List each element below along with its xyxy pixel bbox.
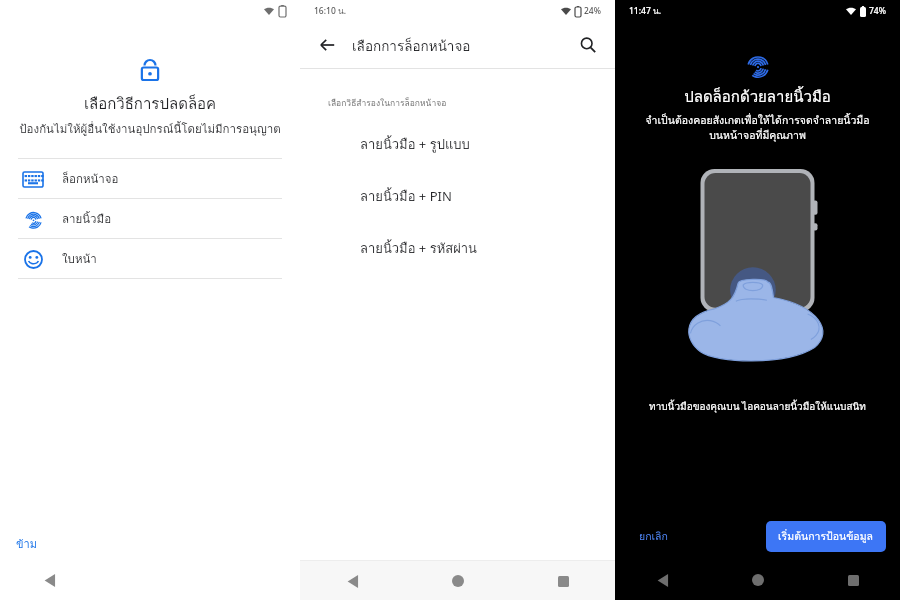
staticText: ลายนิ้วมือ + PIN	[360, 186, 452, 207]
staticText: เลือกการล็อกหน้าจอ	[352, 35, 471, 56]
button[interactable]: Home	[741, 563, 775, 597]
staticText: ล็อกหน้าจอ	[62, 170, 119, 188]
staticText: 16:10 น.	[314, 4, 347, 18]
staticText: ป้องกันไม่ให้ผู้อื่นใช้งานอุปกรณ์นี้โดยไ…	[8, 120, 292, 138]
button[interactable]: Back	[310, 28, 344, 62]
button[interactable]: ใบหน้า	[0, 239, 300, 278]
staticText: เลือกวิธีสำรองในการล็อกหน้าจอ	[328, 96, 447, 110]
button[interactable]: เริ่มต้นการป้อนข้อมูล	[766, 521, 886, 552]
staticText: ทาบนิ้วมือของคุณบน ไอคอนลายนิ้วมือให้แนบ…	[621, 399, 894, 415]
button[interactable]: ลายนิ้วมือ + รูปแบบ	[300, 132, 615, 157]
staticText: ลายนิ้วมือ + รูปแบบ	[360, 134, 470, 155]
button[interactable]: ล็อกหน้าจอ	[0, 159, 300, 198]
staticText: 24%	[584, 5, 601, 17]
staticText: เลือกวิธีการปลดล็อค	[0, 92, 300, 116]
staticText: 74%	[869, 5, 886, 17]
staticText: ลายนิ้วมือ + รหัสผ่าน	[360, 238, 477, 259]
button[interactable]: Back	[646, 563, 680, 597]
staticText: ปลดล็อกด้วยลายนิ้วมือ	[615, 85, 900, 109]
staticText: จำเป็นต้องคอยสังเกตเพื่อให้ได้การจดจำลาย…	[625, 112, 890, 143]
staticText: 11:47 น.	[629, 4, 662, 18]
button[interactable]: Back	[33, 563, 67, 597]
staticText: ยกเลิก	[639, 528, 668, 545]
staticText: ลายนิ้วมือ	[62, 210, 112, 228]
button[interactable]: ลายนิ้วมือ + รหัสผ่าน	[300, 236, 615, 261]
button[interactable]: ข้าม	[10, 531, 43, 556]
button[interactable]: Back	[336, 564, 370, 598]
button[interactable]: ลายนิ้วมือ	[0, 199, 300, 238]
button[interactable]: Recents	[546, 564, 580, 598]
button[interactable]: Search	[571, 28, 605, 62]
button[interactable]: Home	[441, 564, 475, 598]
button[interactable]: ลายนิ้วมือ + PIN	[300, 184, 615, 209]
button[interactable]: Recents	[836, 563, 870, 597]
staticText: ใบหน้า	[62, 250, 97, 268]
staticText: เริ่มต้นการป้อนข้อมูล	[778, 528, 874, 545]
button[interactable]: ยกเลิก	[629, 522, 678, 551]
staticText: ข้าม	[16, 535, 37, 552]
